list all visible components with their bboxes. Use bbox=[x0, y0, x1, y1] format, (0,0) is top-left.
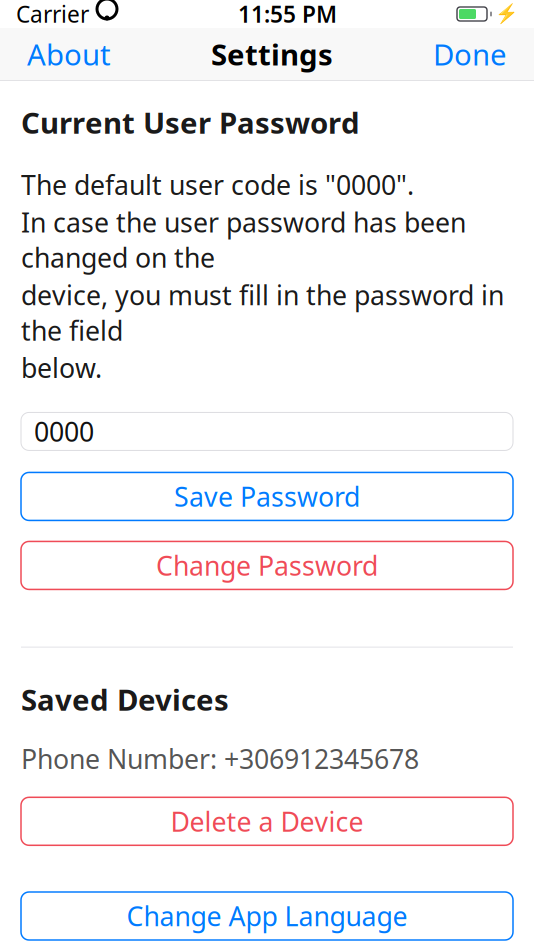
staticText: Current User Password bbox=[21, 103, 360, 142]
staticText: Change App Language bbox=[126, 898, 407, 934]
staticText: Done bbox=[433, 34, 507, 73]
staticText: ⚡ bbox=[495, 3, 518, 25]
staticText: device, you must fill in the password in… bbox=[21, 277, 504, 348]
button[interactable]: About bbox=[21, 28, 117, 79]
staticText: 11:55 PM bbox=[238, 0, 337, 29]
staticText: 0000 bbox=[34, 414, 94, 449]
staticText: Saved Devices bbox=[21, 680, 229, 719]
staticText: Carrier bbox=[16, 0, 89, 29]
staticText: Settings bbox=[211, 34, 333, 73]
staticText: below. bbox=[21, 350, 102, 385]
button[interactable]: Delete a Device bbox=[21, 797, 513, 845]
staticText: The default user code is "0000". bbox=[21, 167, 414, 202]
staticText: Phone Number: +306912345678 bbox=[21, 741, 419, 776]
staticText: About bbox=[27, 34, 111, 73]
staticText: Save Password bbox=[174, 479, 360, 514]
button[interactable]: Save Password bbox=[21, 472, 513, 520]
button[interactable]: Change Password bbox=[21, 541, 513, 589]
staticText: Change Password bbox=[156, 548, 378, 583]
button[interactable]: Done bbox=[427, 28, 513, 79]
staticText: Delete a Device bbox=[170, 804, 363, 839]
staticText: In case the user password has been chang… bbox=[21, 204, 466, 275]
button[interactable]: Change App Language bbox=[21, 892, 513, 940]
